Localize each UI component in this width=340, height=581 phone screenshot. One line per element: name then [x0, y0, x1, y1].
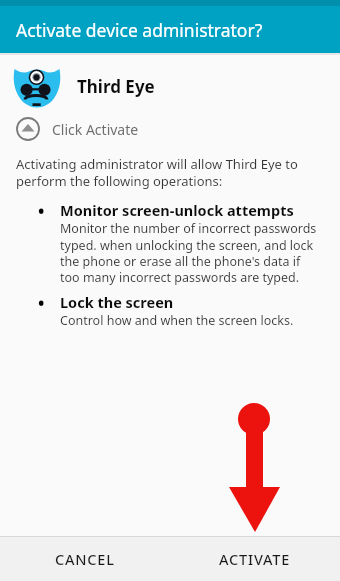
- staticText: Monitor screen-unlock attempts: [60, 200, 294, 220]
- staticText: CANCEL: [55, 549, 115, 569]
- staticText: •: [38, 292, 60, 315]
- button[interactable]: CANCEL: [0, 537, 170, 581]
- staticText: Third Eye: [77, 75, 155, 98]
- staticText: Control how and when the screen locks.: [60, 312, 294, 329]
- button[interactable]: Click Activate: [16, 117, 139, 141]
- button[interactable]: ACTIVATE: [170, 537, 340, 581]
- staticText: •: [38, 200, 60, 223]
- staticText: Activating administrator will allow Thir…: [16, 155, 298, 190]
- staticText: Click Activate: [52, 120, 139, 139]
- staticText: Lock the screen: [60, 292, 174, 312]
- staticText: ACTIVATE: [219, 549, 291, 569]
- staticText: Activate device administrator?: [16, 18, 263, 42]
- staticText: Monitor the number of incorrect password…: [60, 220, 317, 285]
